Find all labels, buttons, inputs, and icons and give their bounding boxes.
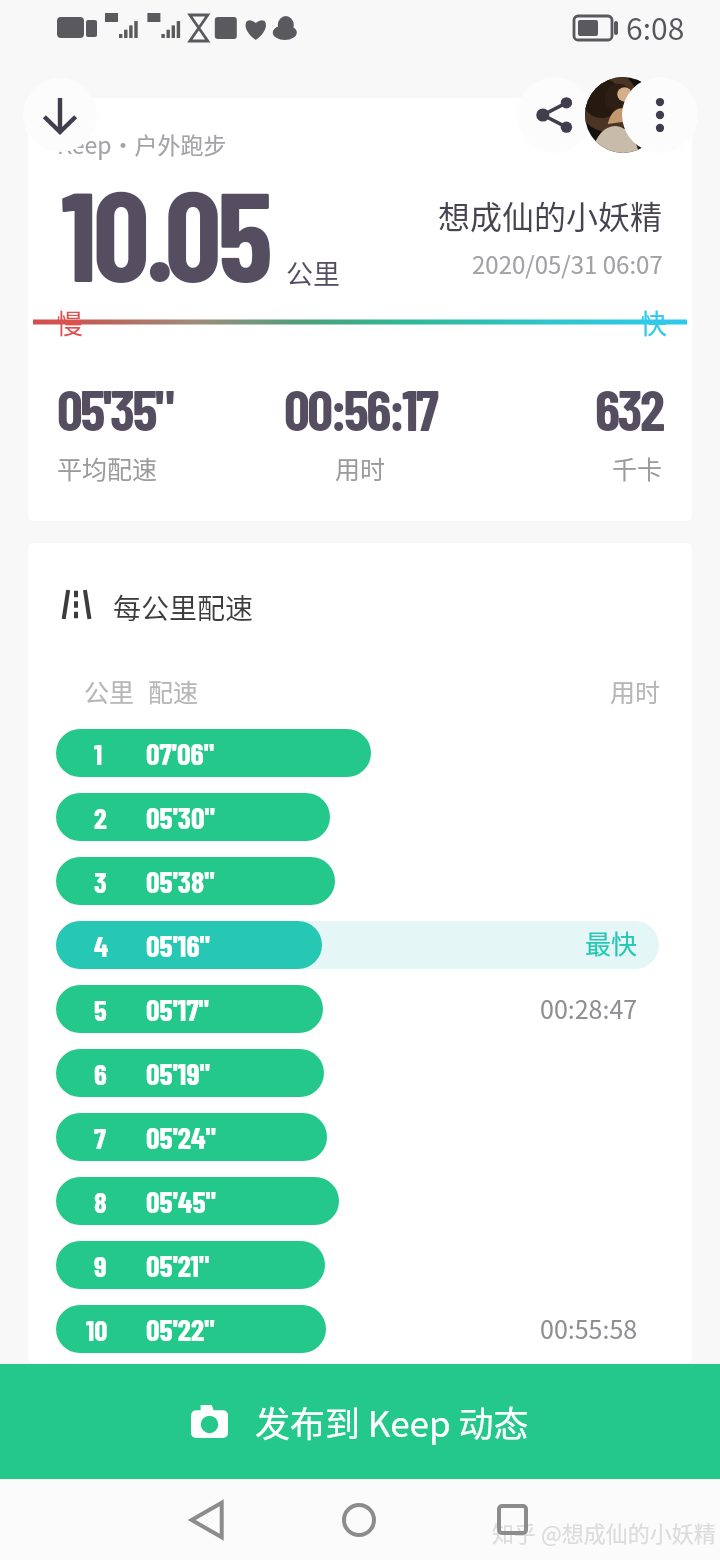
staticText: 05'30" (146, 799, 215, 835)
staticText: 07'06" (146, 735, 215, 771)
button[interactable]: 5 (28, 977, 692, 1041)
button[interactable]: Share (517, 77, 593, 153)
staticText: 00:28:47 (540, 990, 638, 1026)
staticText: 用时 (610, 673, 661, 709)
staticText: 2020/05/31 06:07 (472, 246, 663, 281)
button[interactable]: Profile photo (585, 77, 661, 153)
staticText: 05'19" (146, 1055, 210, 1091)
staticText: 05'35" (57, 374, 173, 442)
staticText: 7 (94, 1120, 106, 1155)
staticText: 632 (595, 374, 663, 442)
button[interactable]: 1 (28, 721, 692, 785)
button[interactable]: Recent apps (468, 1479, 556, 1560)
staticText: 配速 (148, 673, 199, 709)
staticText: 9 (94, 1248, 107, 1283)
staticText: 8 (94, 1184, 107, 1219)
staticText: 2 (94, 800, 107, 835)
button[interactable]: Home (315, 1479, 403, 1560)
staticText: 公里 (286, 253, 340, 292)
button[interactable]: 10 (28, 1297, 692, 1361)
button[interactable]: 发布到 Keep 动态 (0, 1364, 720, 1479)
button[interactable]: 2 (28, 785, 692, 849)
button[interactable]: Back (23, 78, 97, 152)
staticText: 10 (86, 1312, 108, 1347)
staticText: 05'38" (146, 863, 215, 899)
staticText: Keep·户外跑步 (57, 127, 227, 160)
button[interactable]: 3 (28, 849, 692, 913)
button[interactable]: More options (622, 77, 698, 153)
staticText: 10.05 (61, 156, 269, 307)
staticText: 用时 (335, 450, 386, 486)
staticText: 想成仙的小妖精 (438, 192, 663, 238)
staticText: 公里 (84, 673, 135, 709)
button[interactable]: 6 (28, 1041, 692, 1105)
staticText: 慢 (56, 303, 83, 341)
staticText: 5 (94, 992, 107, 1027)
staticText: 发布到 Keep 动态 (255, 1396, 529, 1447)
staticText: 4 (94, 928, 109, 963)
staticText: 快 (640, 303, 667, 341)
button[interactable]: 9 (28, 1233, 692, 1297)
button[interactable]: 7 (28, 1105, 692, 1169)
staticText: 3 (94, 864, 107, 899)
staticText: 平均配速 (57, 450, 158, 486)
staticText: 最快 (585, 924, 638, 962)
button[interactable]: Back (163, 1479, 251, 1560)
staticText: 6:08 (626, 5, 685, 48)
staticText: 05'22" (146, 1311, 215, 1347)
staticText: 05'17" (146, 991, 209, 1027)
staticText: 知乎 @想成仙的小妖精 (492, 1516, 720, 1548)
staticText: 6 (94, 1056, 107, 1091)
staticText: 05'45" (146, 1183, 216, 1219)
staticText: 00:56:17 (284, 374, 437, 442)
staticText: 05'16" (146, 927, 210, 963)
staticText: 05'24" (146, 1119, 216, 1155)
staticText: 00:55:58 (540, 1310, 638, 1346)
button[interactable]: 8 (28, 1169, 692, 1233)
staticText: 千卡 (612, 450, 663, 486)
staticText: 1 (94, 736, 103, 771)
staticText: 每公里配速 (113, 587, 254, 628)
button[interactable]: 4 (28, 913, 692, 977)
staticText: 05'21" (146, 1247, 210, 1283)
